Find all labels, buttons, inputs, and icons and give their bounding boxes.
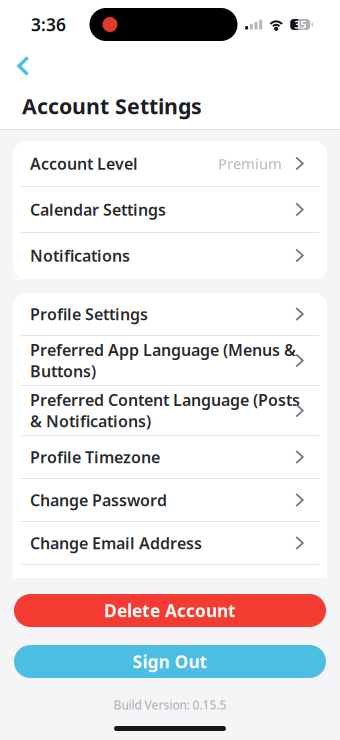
button[interactable]: Preferred App Language (Menus & Buttons): [13, 336, 327, 386]
staticText: Account Settings: [22, 92, 202, 120]
staticText: Delete Account: [104, 599, 236, 622]
staticText: Preferred Content Language (Posts & Noti…: [30, 389, 300, 432]
button[interactable]: Change Email Address: [13, 522, 327, 565]
staticText: Change Password: [30, 489, 167, 511]
button[interactable]: Delete Account: [14, 594, 326, 627]
button[interactable]: Profile Timezone: [13, 436, 327, 479]
button[interactable]: Account Level: [13, 141, 327, 187]
staticText: Sign Out: [132, 650, 207, 673]
button[interactable]: Change Password: [13, 479, 327, 522]
staticText: 35: [294, 17, 306, 32]
staticText: Notifications: [30, 245, 130, 266]
staticText: 3:36: [31, 13, 66, 36]
button[interactable]: Preferred Content Language (Posts & Noti…: [13, 386, 327, 436]
button[interactable]: Profile Settings: [13, 293, 327, 336]
button[interactable]: Notifications: [13, 233, 327, 279]
staticText: Profile Timezone: [30, 446, 160, 468]
staticText: Premium: [218, 154, 282, 173]
staticText: Preferred App Language (Menus & Buttons): [30, 339, 296, 382]
staticText: Calendar Settings: [30, 199, 166, 220]
button[interactable]: Back: [0, 49, 43, 83]
button[interactable]: Calendar Settings: [13, 187, 327, 233]
button[interactable]: Sign Out: [14, 645, 326, 678]
staticText: Change Email Address: [30, 532, 202, 554]
staticText: Account Level: [30, 153, 138, 174]
staticText: Profile Settings: [30, 303, 148, 325]
staticText: Build Version: 0.15.5: [113, 697, 226, 713]
